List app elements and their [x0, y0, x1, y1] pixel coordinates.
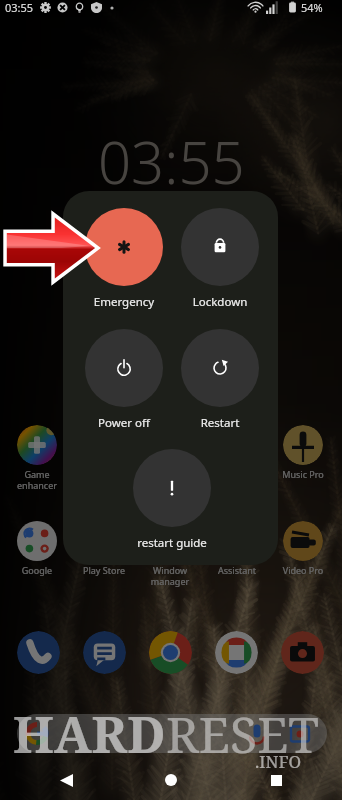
- staticText: Camera: [64, 468, 144, 480]
- button[interactable]: camera: [281, 631, 324, 674]
- staticText: 54%: [301, 0, 323, 15]
- staticText: 03:55: [98, 122, 245, 201]
- staticText: Gallery: [197, 468, 277, 480]
- staticText: Play Store: [64, 564, 144, 576]
- button[interactable]: Window manager: [150, 521, 190, 561]
- staticText: Assistant: [197, 564, 277, 576]
- button[interactable]: msg: [83, 631, 126, 674]
- button[interactable]: Game enhancer: [17, 425, 57, 465]
- button[interactable]: chrome: [149, 631, 192, 674]
- staticText: Game enhancer: [0, 468, 77, 491]
- button[interactable]: photos: [215, 631, 258, 674]
- button[interactable]: Power off: [76, 329, 172, 431]
- button[interactable]: Camera: [84, 425, 124, 465]
- staticText: Music Pro: [263, 468, 342, 480]
- button[interactable]: Home: [153, 762, 189, 798]
- button[interactable]: Lockdown: [172, 208, 268, 310]
- button[interactable]: Video Pro: [283, 521, 323, 561]
- button[interactable]: Gallery: [217, 425, 257, 465]
- staticText: restart guide: [124, 535, 220, 551]
- button[interactable]: Back: [48, 762, 84, 798]
- button[interactable]: Google: [17, 521, 57, 561]
- button[interactable]: Recents: [258, 762, 294, 798]
- staticText: HARD: [13, 700, 166, 768]
- staticText: .INFO: [255, 750, 302, 773]
- staticText: Settings: [130, 468, 210, 480]
- button[interactable]: phone: [17, 631, 60, 674]
- staticText: Video Pro: [263, 564, 342, 576]
- button[interactable]: restart guide: [124, 449, 220, 551]
- staticText: 03:55: [5, 0, 34, 15]
- button[interactable]: Music Pro: [283, 425, 323, 465]
- staticText: Power off: [76, 415, 172, 431]
- staticText: Restart: [172, 415, 268, 431]
- button[interactable]: Settings: [150, 425, 190, 465]
- staticText: Lockdown: [172, 294, 268, 310]
- button[interactable]: Restart: [172, 329, 268, 431]
- staticText: Window manager: [130, 564, 210, 587]
- button[interactable]: Emergency: [76, 208, 172, 310]
- staticText: RESET: [166, 700, 319, 768]
- staticText: Emergency: [76, 294, 172, 310]
- staticText: Google: [0, 564, 77, 576]
- button[interactable]: Search: [17, 714, 327, 753]
